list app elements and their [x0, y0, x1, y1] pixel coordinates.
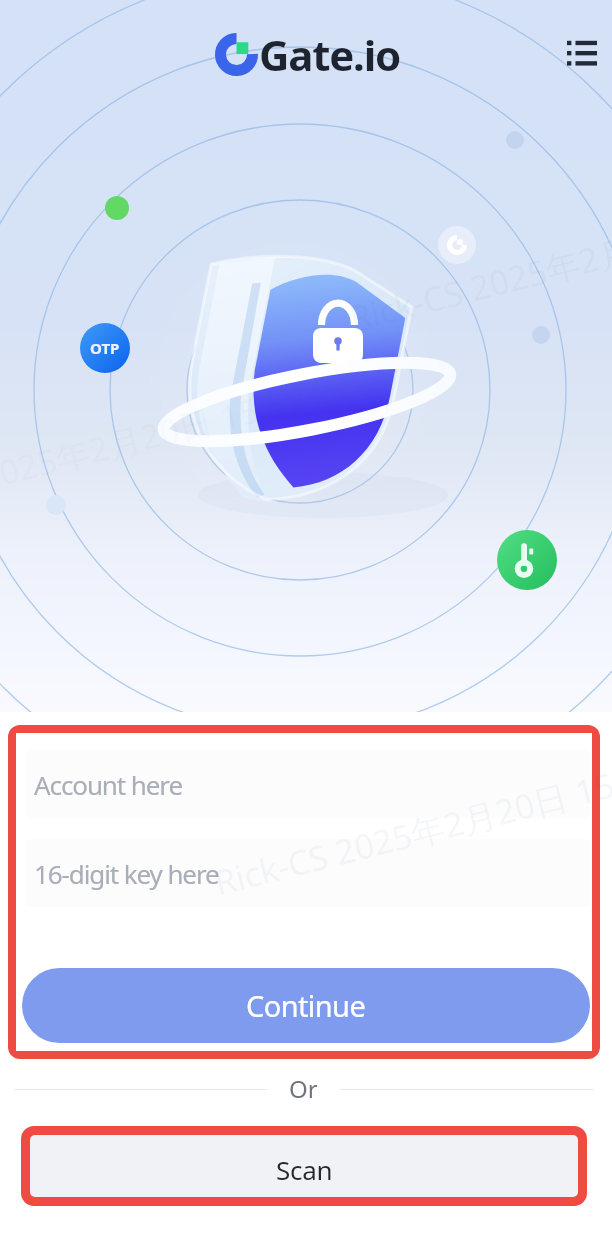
staticText: Rick-CS 2025年2月20日 15:52 [0, 375, 311, 530]
staticText: Or [289, 1072, 318, 1098]
staticText: Continue [246, 986, 366, 1025]
staticText: Rick-CS 2025年2月20日 15:52 [344, 186, 612, 341]
staticText: Scan [276, 1152, 333, 1187]
button[interactable]: Account here [26, 750, 590, 818]
button[interactable]: Scan [30, 1135, 578, 1197]
button[interactable]: Menu [556, 25, 608, 77]
staticText: Gate.io [259, 26, 401, 83]
staticText: Rick-CS 2025年2月20日 15:52 [209, 750, 612, 905]
button[interactable]: 16-digit key here [26, 839, 590, 907]
staticText: 16-digit key here [34, 856, 219, 891]
staticText: Account here [34, 767, 183, 802]
staticText: OTP [90, 338, 120, 358]
button[interactable]: Continue [22, 968, 590, 1043]
